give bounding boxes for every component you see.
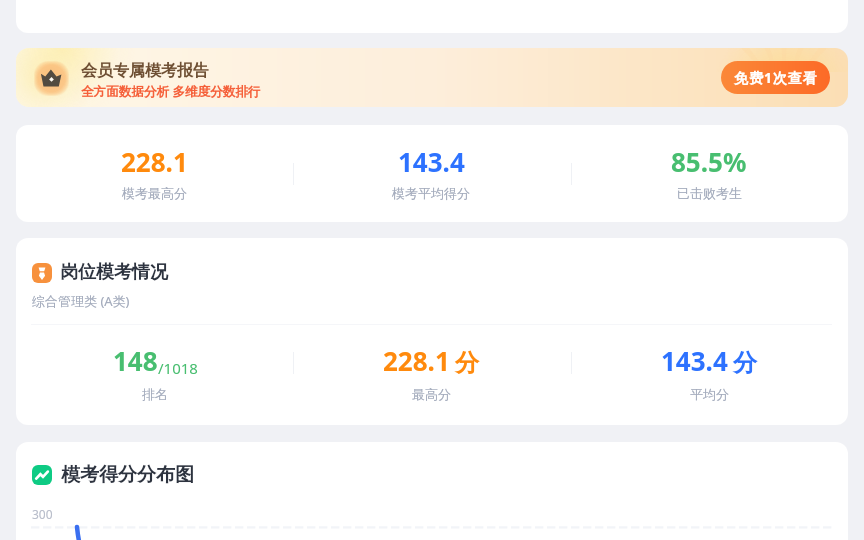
staticText: 全方面数据分析 多维度分数排行 [81,83,261,100]
staticText: 148 [113,343,158,378]
staticText: /1018 [158,358,198,378]
staticText: 分 [733,348,757,378]
staticText: 分 [455,348,479,378]
staticText: 模考平均得分 [392,185,470,201]
staticText: 会员专属模考报告 [81,61,209,81]
staticText: 免费1次查看 [734,68,818,87]
staticText: 平均分 [690,386,729,402]
staticText: 已击败考生 [677,185,742,201]
staticText: 228.1 [121,144,188,179]
staticText: 模考最高分 [122,185,187,201]
staticText: 岗位模考情况 [60,261,168,284]
button[interactable]: 会员专属模考报告 [16,48,848,107]
staticText: 228.1 [383,343,450,378]
staticText: 85.5% [671,144,747,179]
staticText: 最高分 [412,386,451,402]
staticText: 综合管理类 (A类) [32,292,130,310]
button[interactable]: 免费1次查看 [721,61,830,94]
staticText: 143.4 [661,343,728,378]
staticText: 143.4 [398,144,465,179]
staticText: 排名 [142,386,168,402]
staticText: 300 [32,506,53,522]
staticText: 模考得分分布图 [61,463,194,487]
